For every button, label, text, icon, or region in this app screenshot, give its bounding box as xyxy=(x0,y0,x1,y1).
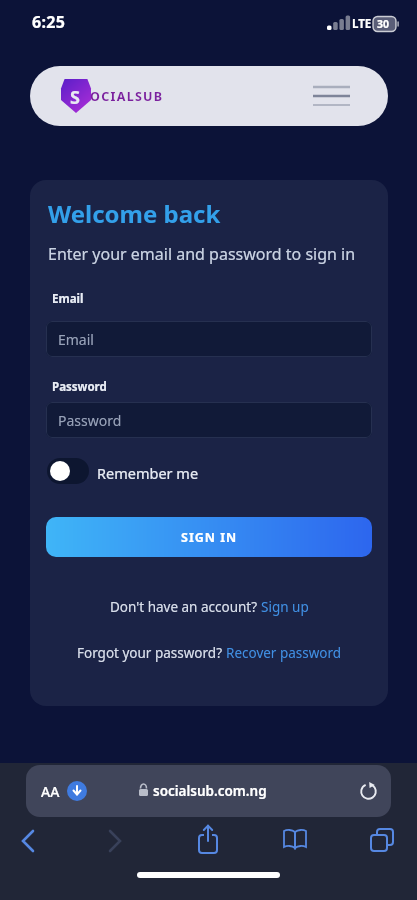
button[interactable] xyxy=(47,458,89,484)
staticText: SIGN IN xyxy=(181,529,238,546)
staticText: Password xyxy=(52,379,107,395)
staticText: OCIALSUB xyxy=(90,88,164,105)
staticText: Password xyxy=(58,411,122,430)
button[interactable]: SIGN IN xyxy=(46,517,372,557)
staticText: AA xyxy=(41,782,60,801)
button[interactable] xyxy=(283,828,307,852)
button[interactable]: Password xyxy=(46,402,372,438)
staticText: 6:25 xyxy=(32,11,66,33)
staticText: Welcome back xyxy=(48,197,221,230)
staticText: Don't have an account? xyxy=(110,598,261,616)
button[interactable] xyxy=(21,830,35,852)
button[interactable] xyxy=(108,830,122,852)
staticText: S xyxy=(70,85,80,110)
button[interactable] xyxy=(197,824,219,856)
staticText: LTE xyxy=(352,16,372,32)
staticText: Enter your email and password to sign in xyxy=(48,243,356,265)
button[interactable]: Email xyxy=(46,321,372,357)
button[interactable]: AA xyxy=(26,765,391,817)
staticText: Forgot your password? xyxy=(77,644,226,662)
staticText: Email xyxy=(58,330,94,349)
button[interactable] xyxy=(370,828,394,852)
staticText: socialsub.com.ng xyxy=(153,782,267,800)
staticText: 30 xyxy=(377,17,390,31)
button[interactable]: Recover password xyxy=(226,644,342,662)
staticText: Email xyxy=(52,291,84,307)
staticText: Remember me xyxy=(97,463,199,483)
button[interactable] xyxy=(313,85,350,107)
button[interactable]: Sign up xyxy=(261,598,309,616)
